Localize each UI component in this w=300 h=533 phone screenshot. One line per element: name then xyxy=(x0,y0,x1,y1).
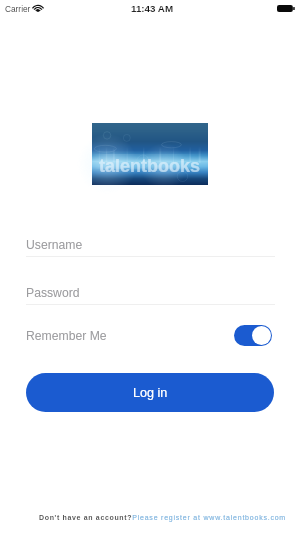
button[interactable]: Password xyxy=(26,280,275,305)
staticText: Carrier xyxy=(5,4,31,13)
staticText: Password xyxy=(26,286,80,300)
button[interactable]: Log in xyxy=(26,373,274,412)
staticText: Remember Me xyxy=(26,329,107,343)
button[interactable]: Username xyxy=(26,232,275,257)
staticText: 11:43 AM xyxy=(131,3,174,14)
staticText: Don't have an account?Please register at… xyxy=(39,514,286,522)
staticText: Log in xyxy=(133,386,168,400)
staticText: Username xyxy=(26,238,83,252)
button[interactable]: Remember Me toggle, on xyxy=(234,325,272,346)
staticText: talentbooks xyxy=(99,156,201,176)
